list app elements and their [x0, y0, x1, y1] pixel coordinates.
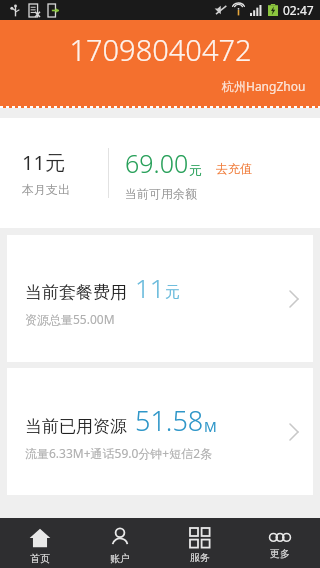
staticText: 11 — [135, 270, 165, 305]
staticText: 更多 — [270, 547, 290, 560]
staticText: 去充值 — [216, 161, 252, 176]
staticText: 17098040472 — [69, 30, 252, 69]
staticText: 首页 — [30, 552, 50, 565]
other: 首页 — [29, 527, 51, 549]
other: 更多 — [269, 532, 291, 544]
staticText: 元 — [189, 162, 202, 178]
staticText: 本月支出 — [22, 182, 70, 197]
staticText: 杭州HangZhou — [222, 78, 306, 94]
button[interactable]: 首页 — [0, 518, 80, 568]
staticText: 账户 — [110, 552, 130, 565]
staticText: 当前可用余额 — [125, 186, 197, 201]
staticText: 02:47 — [283, 2, 314, 18]
button[interactable]: 当前已用资源 — [7, 368, 313, 495]
other: 账户 — [109, 527, 131, 549]
staticText: M — [204, 417, 217, 436]
staticText: 元 — [165, 283, 180, 302]
staticText: 11元 — [22, 149, 65, 176]
staticText: 51.58 — [135, 402, 204, 439]
staticText: 流量6.33M+通话59.0分钟+短信2条 — [25, 445, 213, 461]
button[interactable]: 更多 — [240, 518, 320, 568]
staticText: 当前套餐费用 — [25, 282, 127, 303]
button[interactable]: 服务 — [160, 518, 240, 568]
button[interactable]: 当前套餐费用 — [7, 235, 313, 362]
other: 服务 — [190, 528, 210, 548]
button[interactable]: 去充值 — [214, 159, 254, 178]
staticText: 资源总量55.00M — [25, 311, 115, 327]
staticText: 69.00 — [125, 146, 189, 180]
staticText: 服务 — [190, 551, 210, 564]
staticText: 当前已用资源 — [25, 416, 127, 437]
button[interactable]: 账户 — [80, 518, 160, 568]
